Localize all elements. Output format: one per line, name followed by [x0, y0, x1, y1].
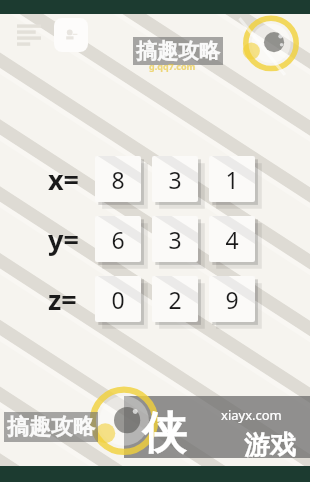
button[interactable]: 9 — [209, 276, 255, 322]
staticText: 9 — [225, 284, 239, 315]
staticText: 4 — [225, 224, 239, 255]
button[interactable]: 4 — [209, 216, 255, 262]
staticText: 3 — [168, 164, 182, 195]
staticText: 3 — [168, 224, 182, 255]
button[interactable]: 8 — [95, 156, 141, 202]
button[interactable]: 6 — [95, 216, 141, 262]
staticText: x= — [48, 161, 80, 198]
staticText: xiayx.com — [221, 406, 282, 424]
button[interactable]: 1 — [209, 156, 255, 202]
staticText: y= — [48, 221, 79, 258]
button[interactable]: 3 — [152, 156, 198, 202]
button[interactable]: 3 — [152, 216, 198, 262]
staticText: z= — [48, 281, 77, 318]
staticText: 侠 — [142, 406, 186, 461]
button[interactable]: Menu — [10, 16, 48, 54]
staticText: 游戏 — [244, 429, 296, 462]
button[interactable]: Card — [54, 18, 88, 52]
staticText: 搞趣攻略 — [7, 413, 95, 441]
staticText: 6 — [111, 224, 125, 255]
staticText: 2 — [168, 284, 182, 315]
staticText: 8 — [111, 164, 125, 195]
button[interactable]: 2 — [152, 276, 198, 322]
staticText: 1 — [225, 164, 239, 195]
button[interactable]: 0 — [95, 276, 141, 322]
staticText: g.qq7.com — [149, 60, 196, 72]
staticText: 0 — [111, 284, 125, 315]
staticText: 搞趣攻略 — [136, 38, 220, 64]
